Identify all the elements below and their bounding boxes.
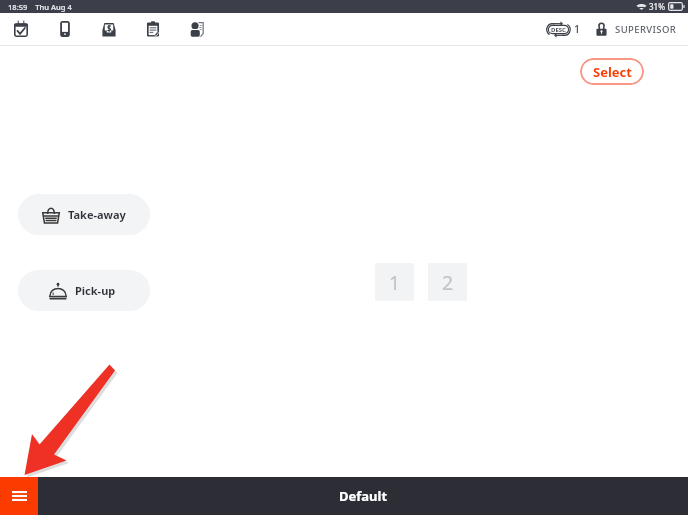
staticText: Take-away	[68, 207, 126, 222]
button[interactable]: Take-away	[18, 194, 150, 235]
staticText: Select	[593, 63, 632, 81]
staticText: Default	[339, 487, 388, 505]
staticText: DESC	[551, 26, 566, 34]
staticText: 18:59 Thu Aug 4	[8, 2, 72, 12]
staticText: SUPERVISOR	[615, 23, 677, 36]
button[interactable]: Orders	[131, 13, 175, 44]
staticText: 31%	[649, 1, 665, 12]
staticText: Pick-up	[75, 283, 116, 298]
button[interactable]: Device	[43, 13, 87, 44]
staticText: 1	[389, 269, 401, 296]
button[interactable]: Descriptor	[546, 22, 581, 36]
staticText: 1	[574, 22, 581, 36]
button[interactable]: SUPERVISOR	[596, 23, 677, 36]
button[interactable]: Calendar	[0, 13, 43, 44]
button[interactable]: 1	[375, 263, 414, 301]
button[interactable]: Select	[580, 58, 644, 85]
button[interactable]: Menu	[0, 477, 38, 515]
button[interactable]: Cash drawer	[87, 13, 131, 44]
button[interactable]: Customer	[175, 13, 219, 44]
button[interactable]: Pick-up	[18, 270, 150, 311]
button[interactable]: 2	[428, 263, 467, 301]
staticText: 2	[442, 269, 454, 296]
